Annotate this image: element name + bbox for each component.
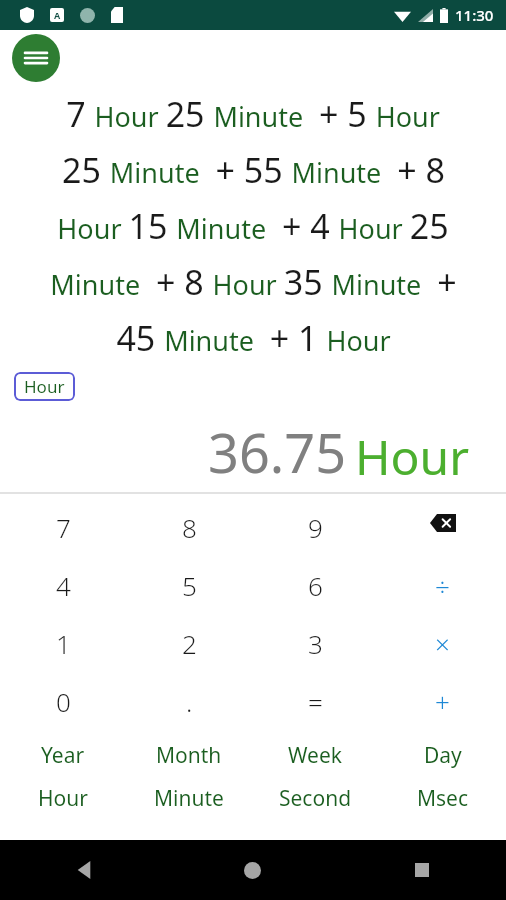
staticText: 25 Minute + 55 Minute + 8 [62,147,445,193]
button[interactable]: Back [0,840,168,900]
button[interactable]: Msec [379,777,506,820]
button[interactable]: Hour [14,372,75,401]
staticText: Minute + 8 Hour 35 Minute + [50,259,457,305]
button[interactable]: 4 [0,556,126,614]
staticText: 0 [56,684,71,719]
staticText: 45 Minute + 1 Hour [116,315,391,361]
staticText: × [435,626,450,661]
button[interactable]: 0 [0,672,126,730]
button[interactable]: Week [252,734,379,777]
staticText: Day [424,741,462,770]
staticText: 4 [56,568,71,603]
staticText: Hour [355,424,470,489]
staticText: Year [41,741,85,770]
staticText: Minute [154,784,224,813]
button[interactable]: Minute [126,777,252,820]
button[interactable]: × [379,614,506,672]
staticText: Month [156,741,222,770]
staticText: Msec [417,784,469,813]
button[interactable]: Day [379,734,506,777]
staticText: Week [288,741,343,770]
staticText: 7 Hour 25 Minute + 5 Hour [66,91,440,137]
button[interactable]: Hour [0,777,126,820]
button[interactable]: = [252,672,379,730]
staticText: 2 [182,626,197,661]
button[interactable]: . [126,672,252,730]
button[interactable]: 3 [252,614,379,672]
staticText: 36.75 [208,415,347,489]
button[interactable]: Second [252,777,379,820]
button[interactable]: Menu [12,34,60,82]
button[interactable]: 1 [0,614,126,672]
button[interactable]: + [379,672,506,730]
button[interactable]: Backspace [379,498,506,556]
button[interactable]: Month [126,734,252,777]
button[interactable]: 8 [126,498,252,556]
button[interactable]: Recent apps [337,840,506,900]
staticText: ÷ [435,568,450,603]
staticText: = [308,684,323,719]
button[interactable]: ÷ [379,556,506,614]
button[interactable]: Year [0,734,126,777]
staticText: Hour [38,784,88,813]
staticText: 5 [182,568,197,603]
staticText: 7 [56,510,71,545]
button[interactable]: Home [168,840,337,900]
button[interactable]: 5 [126,556,252,614]
staticText: 3 [308,626,323,661]
staticText: 9 [308,510,323,545]
staticText: 8 [182,510,197,545]
button[interactable]: 9 [252,498,379,556]
staticText: 1 [56,626,71,661]
button[interactable]: 2 [126,614,252,672]
button[interactable]: 6 [252,556,379,614]
staticText: . [186,684,193,719]
button[interactable]: 7 [0,498,126,556]
staticText: Hour [24,375,65,398]
staticText: 11:30 [455,5,494,25]
staticText: Hour 15 Minute + 4 Hour 25 [57,203,449,249]
staticText: A [54,9,61,21]
staticText: + [435,684,450,719]
staticText: 6 [308,568,323,603]
staticText: Second [279,784,352,813]
